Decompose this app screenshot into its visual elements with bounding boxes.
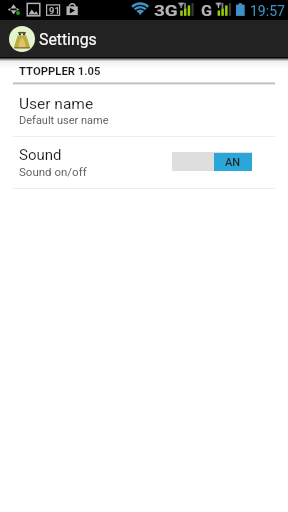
button[interactable] — [0, 136, 288, 188]
staticText: 19:57 — [250, 3, 285, 19]
button[interactable]: Sound on/off toggle — [172, 152, 252, 171]
staticText: Sound — [19, 146, 62, 164]
staticText: User name — [19, 95, 94, 113]
button[interactable]: Settings, navigate up — [0, 20, 103, 57]
staticText: 3G — [154, 2, 178, 20]
staticText: G — [201, 2, 213, 20]
staticText: 91 — [49, 5, 60, 16]
staticText: Sound on/off — [19, 165, 87, 178]
staticText: Default user name — [19, 114, 109, 127]
button[interactable] — [0, 84, 288, 135]
staticText: Settings — [39, 30, 97, 49]
staticText: TTOPPLER 1.05 — [19, 65, 101, 78]
staticText: AN — [225, 156, 241, 169]
